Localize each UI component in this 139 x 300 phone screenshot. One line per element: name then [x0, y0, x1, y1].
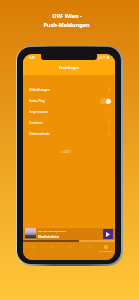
staticText: Content: [29, 120, 43, 125]
staticText: v 2.0.1: [61, 150, 71, 154]
staticText: ORF WIEN HEUTE JOURNAL: [38, 230, 66, 233]
button[interactable]: Impressum: [23, 106, 115, 117]
button[interactable]: Datenschutz: [23, 128, 115, 139]
staticText: 9:41: [29, 56, 35, 60]
staticText: Datenschutz: [29, 131, 50, 136]
staticText: Auto-Play: [29, 98, 45, 103]
button[interactable]: Einstellungen: [97, 242, 115, 260]
button[interactable]: Auto-Play toggle: [100, 98, 111, 104]
staticText: Impressum: [29, 109, 48, 114]
staticText: ORF Wien -: [52, 12, 82, 19]
button[interactable]: Mitteilungen: [23, 84, 115, 95]
button[interactable]: Auto-Play: [23, 95, 115, 106]
staticText: Push-Meldungen: [43, 21, 90, 28]
staticText: Nachrichten: [38, 234, 59, 239]
staticText: Mitteilungen: [29, 87, 50, 92]
staticText: Einstellungen: [59, 66, 79, 70]
staticText: Einstellungen: [99, 250, 113, 253]
button[interactable]: Content: [23, 117, 115, 128]
button[interactable]: Radio: [23, 242, 42, 260]
button[interactable]: Play: [103, 229, 113, 239]
